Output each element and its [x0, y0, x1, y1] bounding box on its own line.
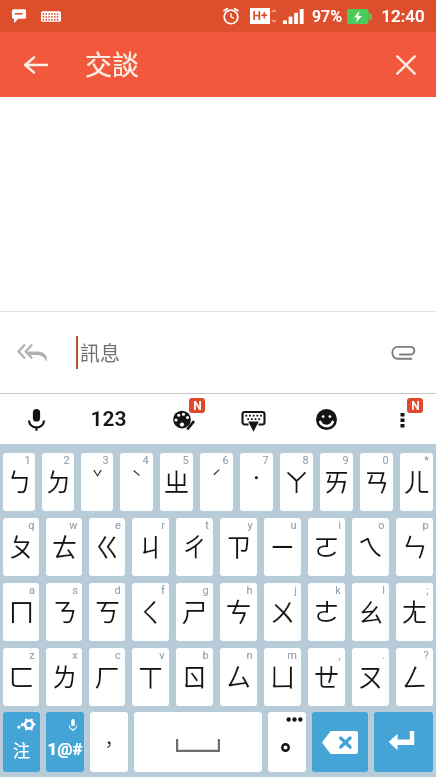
button[interactable]: r	[132, 518, 169, 576]
staticText: ，	[99, 730, 119, 758]
button[interactable]: j	[264, 583, 301, 641]
button[interactable]: k	[308, 583, 345, 641]
button[interactable]: 1@#	[46, 712, 84, 772]
staticText: ㄥ	[401, 657, 428, 695]
button[interactable]: 9	[320, 453, 353, 511]
button[interactable]: a	[3, 583, 39, 641]
staticText: ㄝ	[313, 657, 340, 695]
staticText: i	[338, 519, 341, 532]
button[interactable]: ,	[308, 648, 345, 706]
staticText: ,	[338, 649, 341, 662]
button[interactable]: Input mode	[3, 712, 40, 772]
staticText: ㄘ	[225, 592, 252, 630]
button[interactable]: 8	[280, 453, 313, 511]
button[interactable]: b	[176, 648, 213, 706]
staticText: ˋ	[131, 464, 142, 490]
staticText: 9	[342, 454, 349, 467]
button[interactable]: 7	[240, 453, 273, 511]
button[interactable]: t	[176, 518, 213, 576]
button[interactable]: Keyboard switch	[217, 394, 290, 444]
staticText: p	[422, 519, 429, 532]
button[interactable]: Voice input	[0, 394, 72, 444]
button[interactable]: g	[176, 583, 213, 641]
button[interactable]: s	[46, 583, 82, 641]
staticText: 4	[142, 454, 149, 467]
button[interactable]: *	[400, 453, 433, 511]
button[interactable]	[268, 712, 306, 772]
button[interactable]: 1	[3, 453, 35, 511]
button[interactable]: m	[264, 648, 301, 706]
staticText: ˊ	[211, 464, 222, 490]
button[interactable]: 5	[160, 453, 193, 511]
button[interactable]: z	[3, 648, 39, 706]
button[interactable]: Theme	[144, 394, 217, 444]
staticText: e	[115, 519, 121, 532]
staticText: 1	[24, 454, 31, 467]
button[interactable]: Attach	[381, 331, 425, 375]
staticText: c	[115, 649, 121, 662]
staticText: ㄋ	[51, 592, 78, 630]
button[interactable]: .	[352, 648, 389, 706]
staticText: a	[29, 584, 35, 597]
staticText: t	[205, 519, 209, 532]
button[interactable]: 3	[81, 453, 113, 511]
button[interactable]: Enter	[374, 712, 433, 772]
staticText: w	[69, 519, 78, 532]
staticText: ㄙ	[225, 657, 252, 695]
button[interactable]: o	[352, 518, 389, 576]
button[interactable]: n	[220, 648, 257, 706]
button[interactable]: w	[46, 518, 82, 576]
staticText: v	[159, 649, 165, 662]
staticText: H+	[252, 9, 268, 23]
button[interactable]: h	[220, 583, 257, 641]
button[interactable]: u	[264, 518, 301, 576]
button[interactable]: 0	[360, 453, 393, 511]
staticText: ㄌ	[51, 657, 78, 695]
button[interactable]: v	[132, 648, 169, 706]
staticText: ㄟ	[357, 527, 384, 565]
button[interactable]: Back	[11, 41, 59, 89]
staticText: ㄓ	[163, 462, 190, 500]
staticText: k	[335, 584, 341, 597]
staticText: ㄨ	[269, 592, 296, 630]
staticText: 1@#	[47, 739, 83, 759]
staticText: 12:40	[381, 6, 425, 26]
staticText: m	[287, 649, 297, 662]
staticText: ㄕ	[181, 592, 208, 630]
button[interactable]: e	[89, 518, 125, 576]
button[interactable]: ?	[396, 648, 433, 706]
button[interactable]: 2	[42, 453, 74, 511]
staticText: ˙	[252, 464, 261, 490]
button[interactable]: 123	[72, 394, 144, 444]
staticText: ㄢ	[363, 462, 390, 500]
staticText: 5	[182, 454, 189, 467]
button[interactable]: f	[132, 583, 169, 641]
button[interactable]: x	[46, 648, 82, 706]
button[interactable]: y	[220, 518, 257, 576]
button[interactable]: Close	[382, 41, 430, 89]
staticText: j	[294, 584, 297, 597]
button[interactable]: More options	[363, 394, 436, 444]
button[interactable]: i	[308, 518, 345, 576]
staticText: x	[72, 649, 78, 662]
staticText: ㄅ	[6, 462, 33, 500]
button[interactable]: c	[89, 648, 125, 706]
staticText: d	[114, 584, 121, 597]
button[interactable]: Space	[134, 712, 262, 772]
button[interactable]: ;	[396, 583, 433, 641]
staticText: .	[382, 649, 385, 662]
button[interactable]: Emoji	[290, 394, 363, 444]
button[interactable]: ，	[90, 712, 128, 772]
staticText: ㄡ	[357, 657, 384, 695]
button[interactable]: q	[3, 518, 39, 576]
button[interactable]: 6	[200, 453, 233, 511]
button[interactable]: Backspace	[312, 712, 368, 772]
button[interactable]: Reply all	[10, 330, 56, 376]
staticText: ㄖ	[181, 657, 208, 695]
staticText: ㄛ	[313, 527, 340, 565]
button[interactable]: l	[352, 583, 389, 641]
staticText: 6	[222, 454, 229, 467]
button[interactable]: 4	[120, 453, 153, 511]
button[interactable]: d	[89, 583, 125, 641]
button[interactable]: p	[396, 518, 433, 576]
